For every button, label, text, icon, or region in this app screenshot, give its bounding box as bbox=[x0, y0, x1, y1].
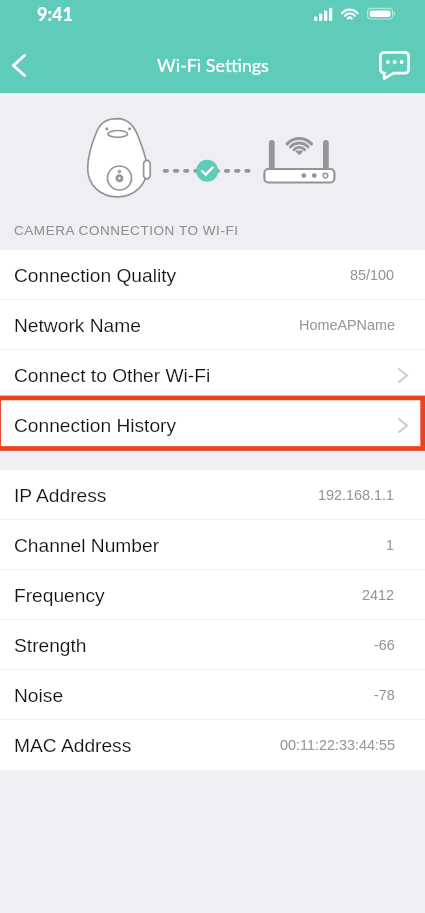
staticText: 85/100 bbox=[350, 267, 395, 283]
staticText: Wi-Fi Settings bbox=[157, 54, 269, 76]
staticText: Frequency bbox=[14, 585, 105, 606]
staticText: 9:41 bbox=[37, 3, 73, 25]
button[interactable]: Noise bbox=[0, 670, 425, 720]
staticText: Channel Number bbox=[14, 535, 160, 556]
button[interactable]: Messages bbox=[374, 45, 414, 85]
staticText: Network Name bbox=[14, 315, 141, 336]
staticText: IP Address bbox=[14, 485, 107, 506]
button[interactable]: Strength bbox=[0, 620, 425, 670]
staticText: -78 bbox=[374, 687, 395, 703]
button[interactable]: Connection History bbox=[0, 400, 425, 450]
button[interactable]: Frequency bbox=[0, 570, 425, 620]
staticText: Connection Quality bbox=[14, 265, 177, 286]
staticText: 1 bbox=[386, 537, 395, 553]
staticText: Connect to Other Wi-Fi bbox=[14, 365, 211, 386]
button[interactable]: MAC Address bbox=[0, 720, 425, 770]
staticText: CAMERA CONNECTION TO WI-FI bbox=[14, 223, 239, 238]
button[interactable]: Network Name bbox=[0, 300, 425, 350]
staticText: 192.168.1.1 bbox=[318, 487, 395, 503]
button[interactable]: IP Address bbox=[0, 470, 425, 520]
button[interactable]: Connection Quality bbox=[0, 250, 425, 300]
staticText: Strength bbox=[14, 635, 87, 656]
button[interactable]: Channel Number bbox=[0, 520, 425, 570]
button[interactable]: Back bbox=[1, 47, 37, 83]
button[interactable]: Connect to Other Wi-Fi bbox=[0, 350, 425, 400]
staticText: 2412 bbox=[362, 587, 395, 603]
staticText: -66 bbox=[374, 637, 395, 653]
staticText: HomeAPName bbox=[299, 317, 395, 333]
staticText: Noise bbox=[14, 685, 64, 706]
staticText: 00:11:22:33:44:55 bbox=[280, 737, 395, 753]
staticText: Connection History bbox=[14, 415, 177, 436]
staticText: MAC Address bbox=[14, 735, 132, 756]
